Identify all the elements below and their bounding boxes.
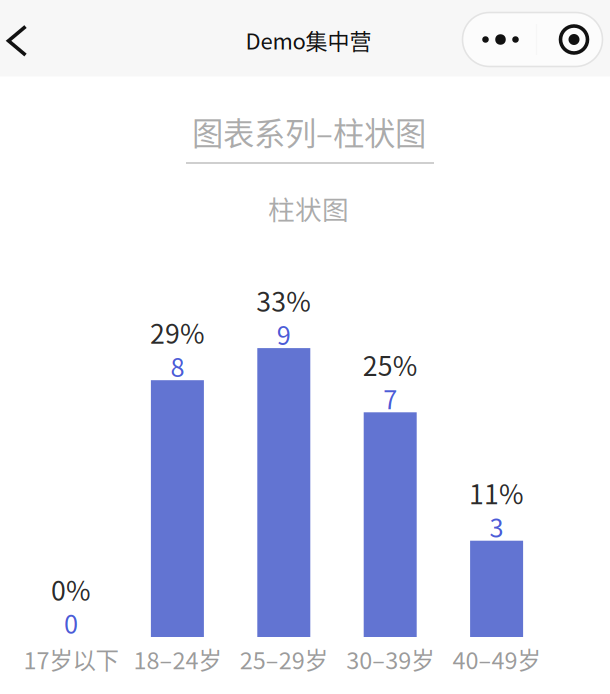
staticText: 29% — [150, 313, 205, 351]
staticText: Demo集中营 — [245, 24, 371, 56]
staticText: 7 — [383, 380, 397, 416]
staticText: 0% — [51, 570, 91, 608]
staticText: 30–39岁 — [346, 642, 434, 676]
staticText: 11% — [469, 473, 524, 512]
staticText: 18–24岁 — [133, 642, 221, 676]
staticText: 图表系列–柱状图 — [192, 109, 426, 154]
staticText: 33% — [256, 281, 311, 319]
staticText: 9 — [277, 316, 291, 352]
staticText: 25% — [363, 345, 418, 384]
button[interactable]: Back — [0, 2, 54, 79]
staticText: 8 — [170, 348, 184, 384]
staticText: 0 — [64, 604, 78, 641]
button[interactable]: More options — [462, 12, 602, 66]
staticText: 柱状图 — [268, 189, 349, 227]
staticText: 25–29岁 — [240, 642, 328, 676]
staticText: 17岁以下 — [23, 642, 118, 676]
staticText: 40–49岁 — [453, 642, 541, 676]
staticText: 3 — [490, 508, 504, 545]
